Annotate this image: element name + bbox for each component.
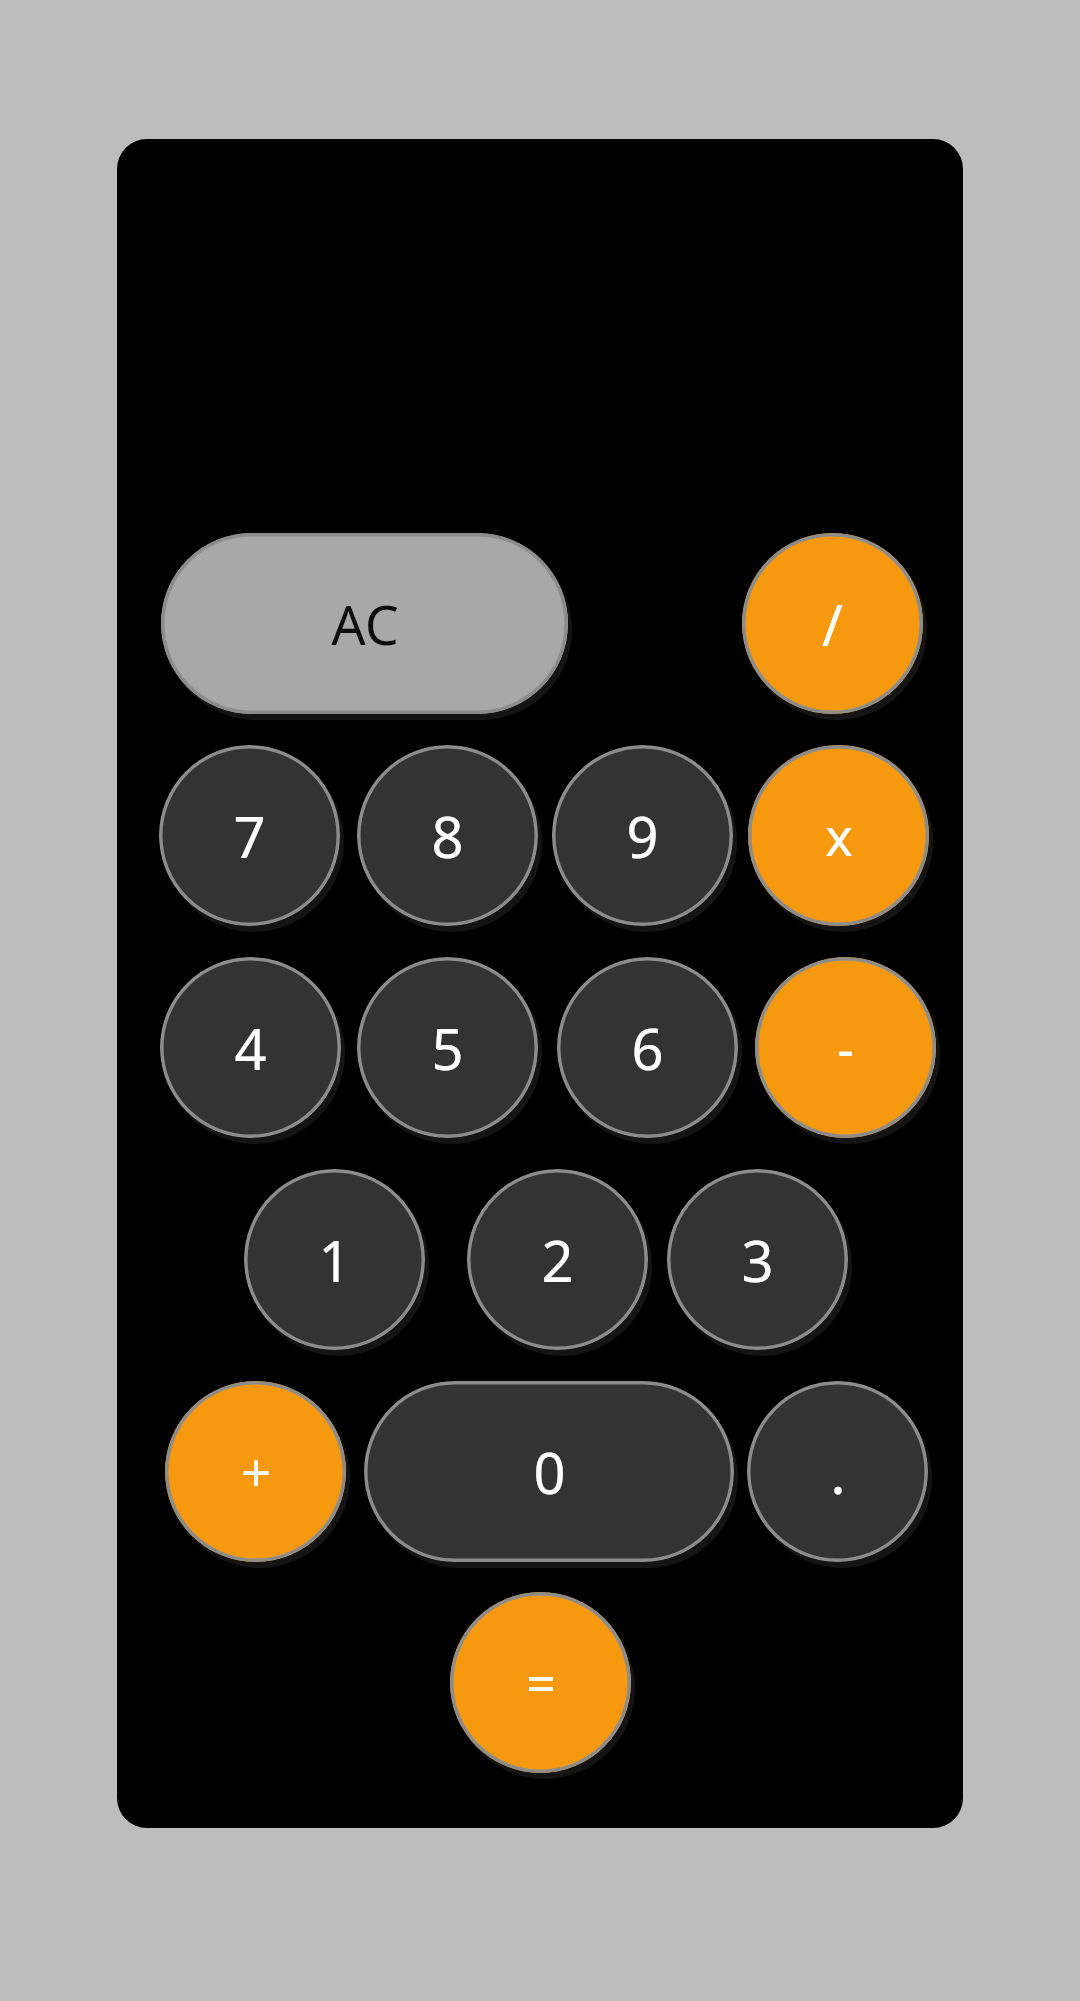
button[interactable]: 1 [244,1169,425,1350]
staticText: AC [331,587,399,661]
staticText: = [526,1647,556,1718]
button[interactable]: Equals [450,1592,631,1773]
staticText: + [241,1436,271,1507]
staticText: 9 [626,798,659,874]
staticText: 2 [541,1222,574,1298]
button[interactable]: Divide [742,533,923,714]
button[interactable]: 4 [160,957,341,1138]
staticText: x [825,800,853,871]
staticText: 5 [431,1010,464,1086]
staticText: 3 [741,1222,774,1298]
button[interactable]: 3 [667,1169,848,1350]
staticText: 7 [233,798,266,874]
staticText: / [822,586,843,662]
staticText: 8 [431,798,464,874]
button[interactable]: Add [165,1381,346,1562]
button[interactable]: 5 [357,957,538,1138]
staticText: 0 [533,1434,566,1510]
staticText: 6 [631,1010,664,1086]
button[interactable]: Subtract [755,957,936,1138]
staticText: 4 [234,1010,267,1086]
button[interactable]: 2 [467,1169,648,1350]
button[interactable]: 9 [552,745,733,926]
button[interactable]: AC [161,533,568,714]
staticText: 1 [318,1222,351,1298]
staticText: . [830,1434,846,1510]
button[interactable]: 6 [557,957,738,1138]
button[interactable]: Multiply [748,745,929,926]
button[interactable]: 7 [159,745,340,926]
button[interactable]: 8 [357,745,538,926]
staticText: - [837,1012,854,1083]
button[interactable]: 0 [364,1381,734,1562]
button[interactable]: Decimal point [747,1381,928,1562]
